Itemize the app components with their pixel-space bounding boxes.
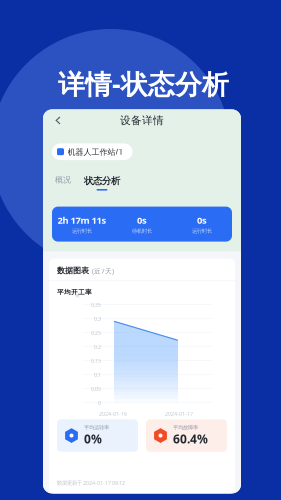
staticText: 待机时长 [132,228,152,234]
staticText: 设备详情 [120,114,164,127]
staticText: 数据更新于 2024-01-17 09:12 [57,479,125,486]
staticText: 0.15 [91,357,101,364]
staticText: 60.4% [173,431,208,447]
staticText: 详情-状态分析 [58,66,229,101]
button[interactable]: 机器人工作站/1 [52,143,132,160]
staticText: 0.3 [94,315,101,322]
staticText: (近7天) [92,267,114,275]
staticText: 2h 17m 11s [57,214,106,226]
staticText: 数据图表 [57,266,89,275]
staticText: 0.2 [94,343,101,350]
staticText: 0s [137,214,147,226]
staticText: 0 [98,399,101,406]
staticText: 平均故障率 [173,424,198,431]
staticText: 0.05 [91,385,101,392]
staticText: 运行时长 [72,228,92,234]
staticText: 状态分析 [84,175,120,186]
staticText: 2024-01-17 [165,410,193,417]
staticText: 平均开工率 [57,288,92,296]
staticText: 0% [84,431,102,447]
button[interactable]: 状态分析 [84,175,120,191]
staticText: 机器人工作站/1 [67,146,123,157]
staticText: % [75,292,79,299]
staticText: 运行时长 [192,228,212,234]
staticText: 2024-01-16 [99,410,127,417]
staticText: 0.35 [91,301,101,308]
staticText: 0.25 [91,329,101,336]
staticText: 0.1 [94,371,101,378]
staticText: 概况 [55,175,71,185]
staticText: 0s [197,214,207,226]
button[interactable]: 概况 [55,175,71,189]
staticText: 平均运转率 [84,424,109,431]
button[interactable]: Back [51,113,65,127]
